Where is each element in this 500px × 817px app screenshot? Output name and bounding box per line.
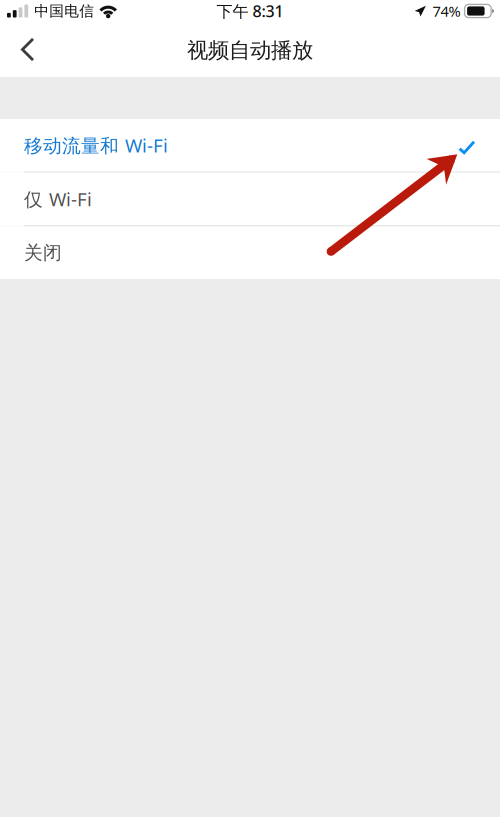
- staticText: 下午 8:31: [216, 0, 283, 22]
- button[interactable]: 关闭: [0, 226, 500, 279]
- button[interactable]: Back: [0, 22, 46, 77]
- button[interactable]: 仅 Wi-Fi: [0, 173, 500, 225]
- button[interactable]: 移动流量和 Wi-Fi: [0, 119, 500, 172]
- staticText: 仅 Wi-Fi: [24, 187, 92, 211]
- staticText: 移动流量和 Wi-Fi: [24, 133, 168, 158]
- staticText: 中国电信: [34, 2, 94, 20]
- staticText: 关闭: [24, 241, 62, 264]
- staticText: 74%: [433, 1, 461, 21]
- staticText: 视频自动播放: [187, 37, 313, 64]
